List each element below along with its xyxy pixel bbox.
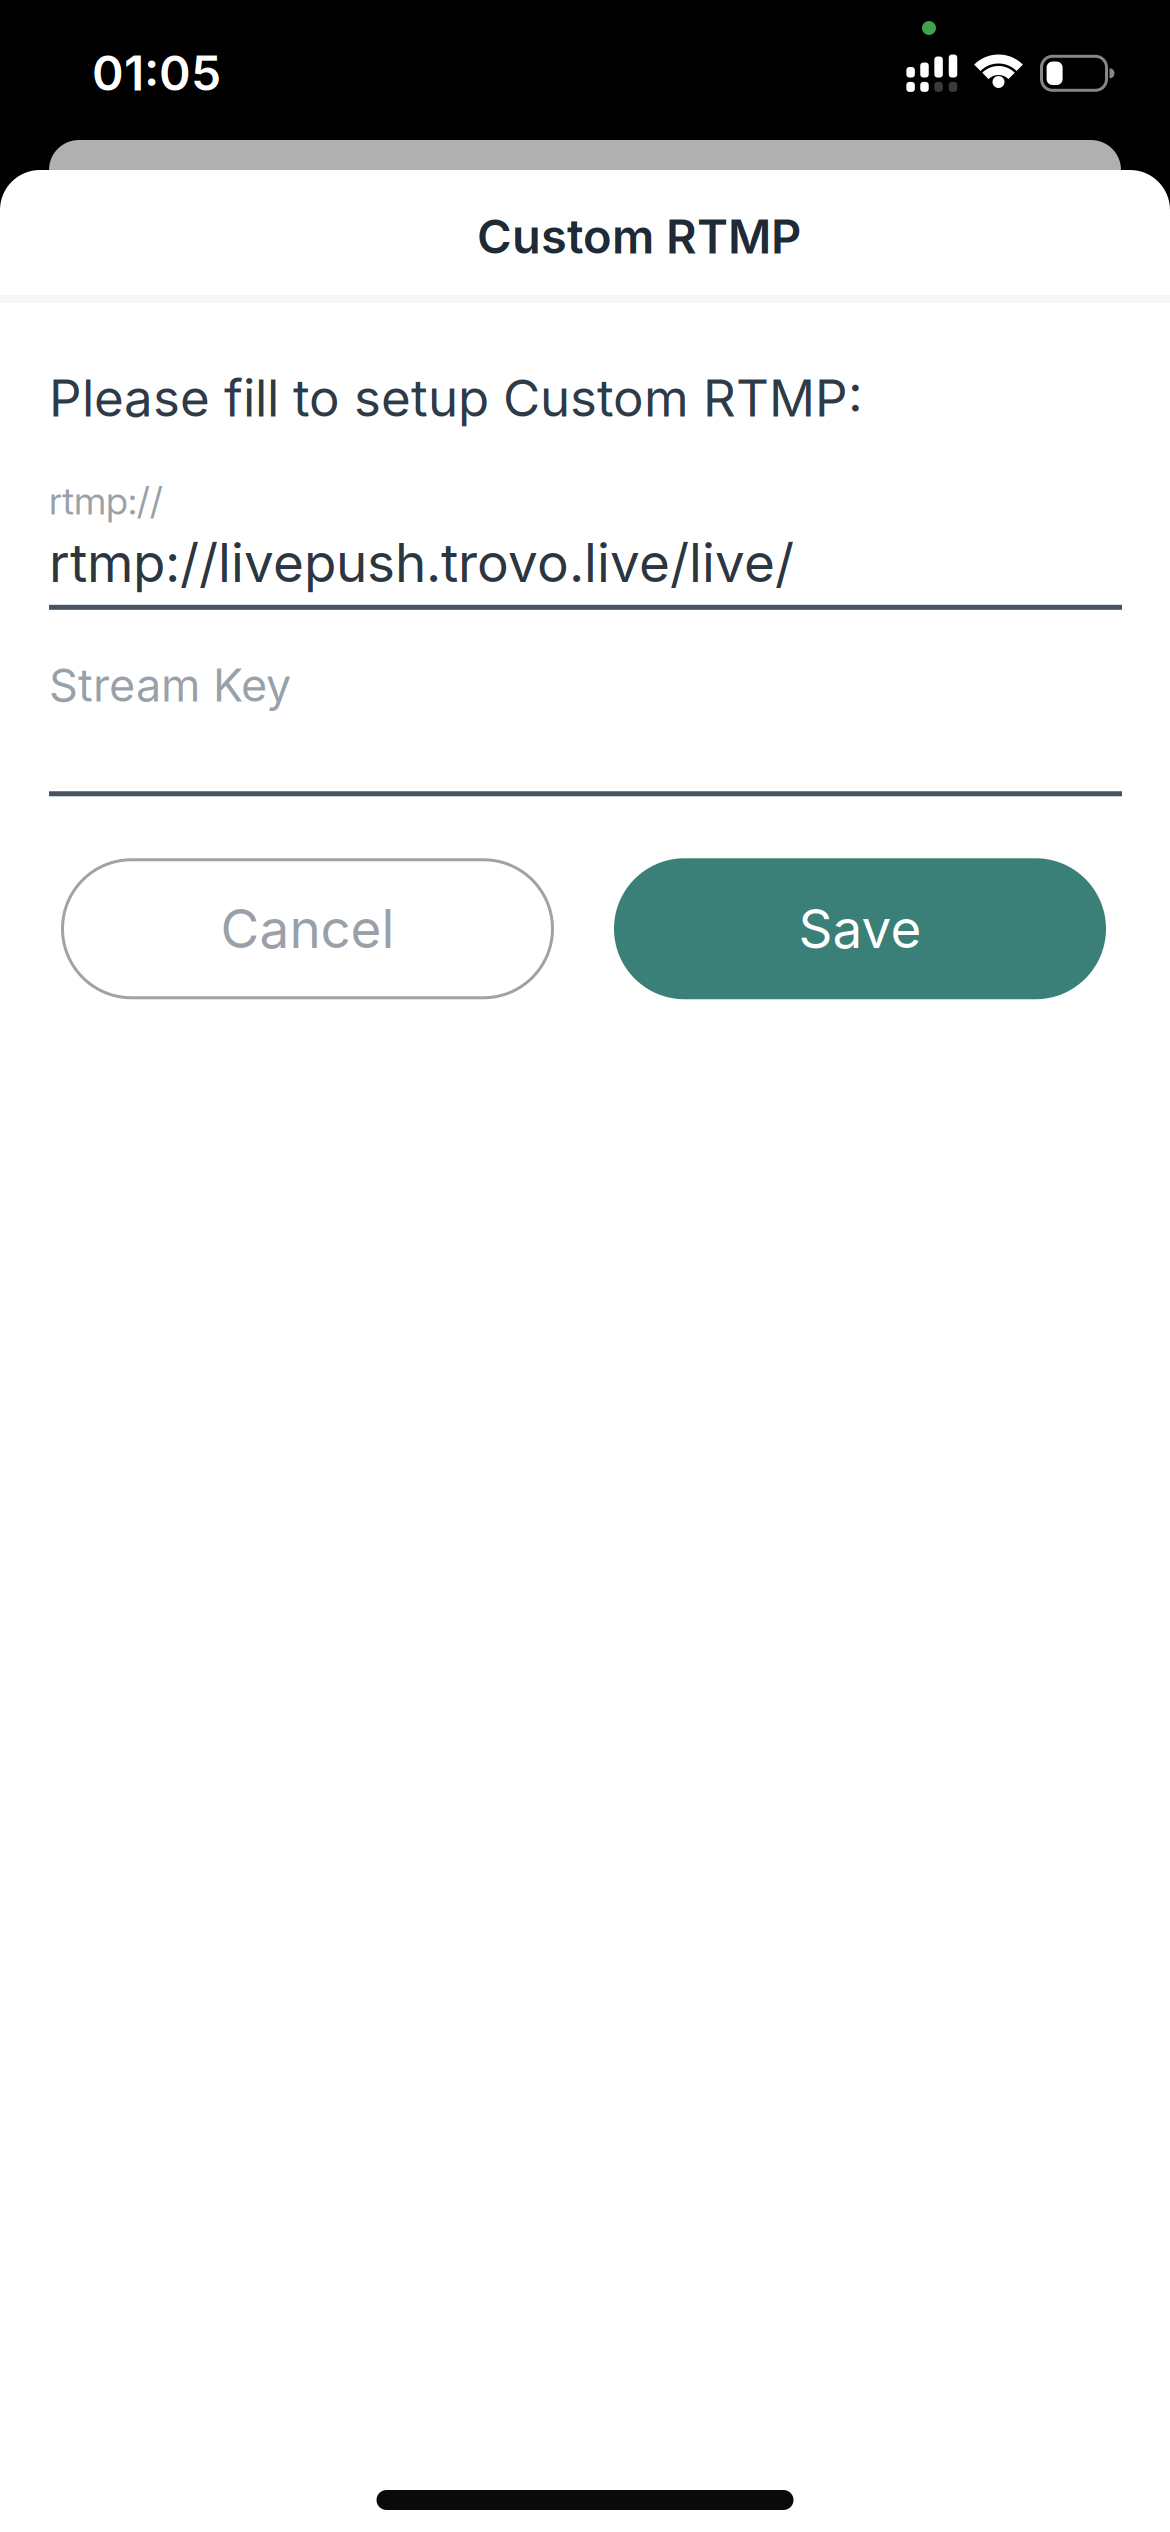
staticText: Stream Key — [49, 658, 291, 712]
button[interactable]: Stream Key — [49, 658, 1122, 796]
staticText: Save — [798, 897, 921, 961]
staticText: Please fill to setup Custom RTMP: — [49, 367, 863, 429]
staticText: 01:05 — [92, 44, 221, 102]
staticText: rtmp:// — [49, 478, 163, 524]
button[interactable]: rtmp://livepush.trovo.live/live/ — [49, 531, 1122, 610]
button[interactable]: Save — [614, 858, 1106, 999]
button[interactable]: Cancel — [61, 858, 554, 999]
staticText: Cancel — [220, 897, 394, 961]
staticText: Custom RTMP — [477, 208, 801, 265]
staticText: rtmp://livepush.trovo.live/live/ — [49, 531, 794, 595]
